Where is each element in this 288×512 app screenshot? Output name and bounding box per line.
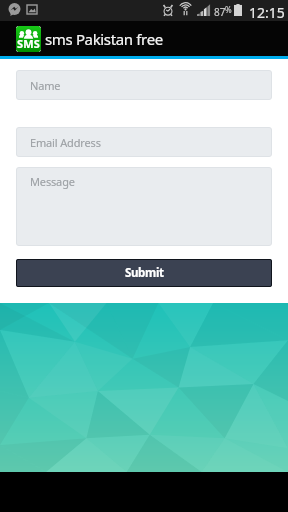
button[interactable]: Name bbox=[16, 70, 272, 100]
staticText: sms Pakistan free bbox=[45, 29, 163, 49]
staticText: % bbox=[225, 4, 232, 15]
staticText: Name bbox=[30, 78, 61, 93]
staticText: Submit bbox=[125, 265, 164, 281]
staticText: SMS bbox=[17, 36, 41, 51]
staticText: Message bbox=[30, 174, 75, 189]
staticText: Email Address bbox=[30, 135, 101, 150]
button[interactable]: Submit bbox=[16, 259, 272, 287]
staticText: 12:15 bbox=[249, 3, 285, 22]
other: App icon bbox=[16, 26, 41, 52]
staticText: 87 bbox=[214, 5, 226, 19]
button[interactable]: Message bbox=[16, 167, 272, 246]
button[interactable]: Email Address bbox=[16, 127, 272, 157]
